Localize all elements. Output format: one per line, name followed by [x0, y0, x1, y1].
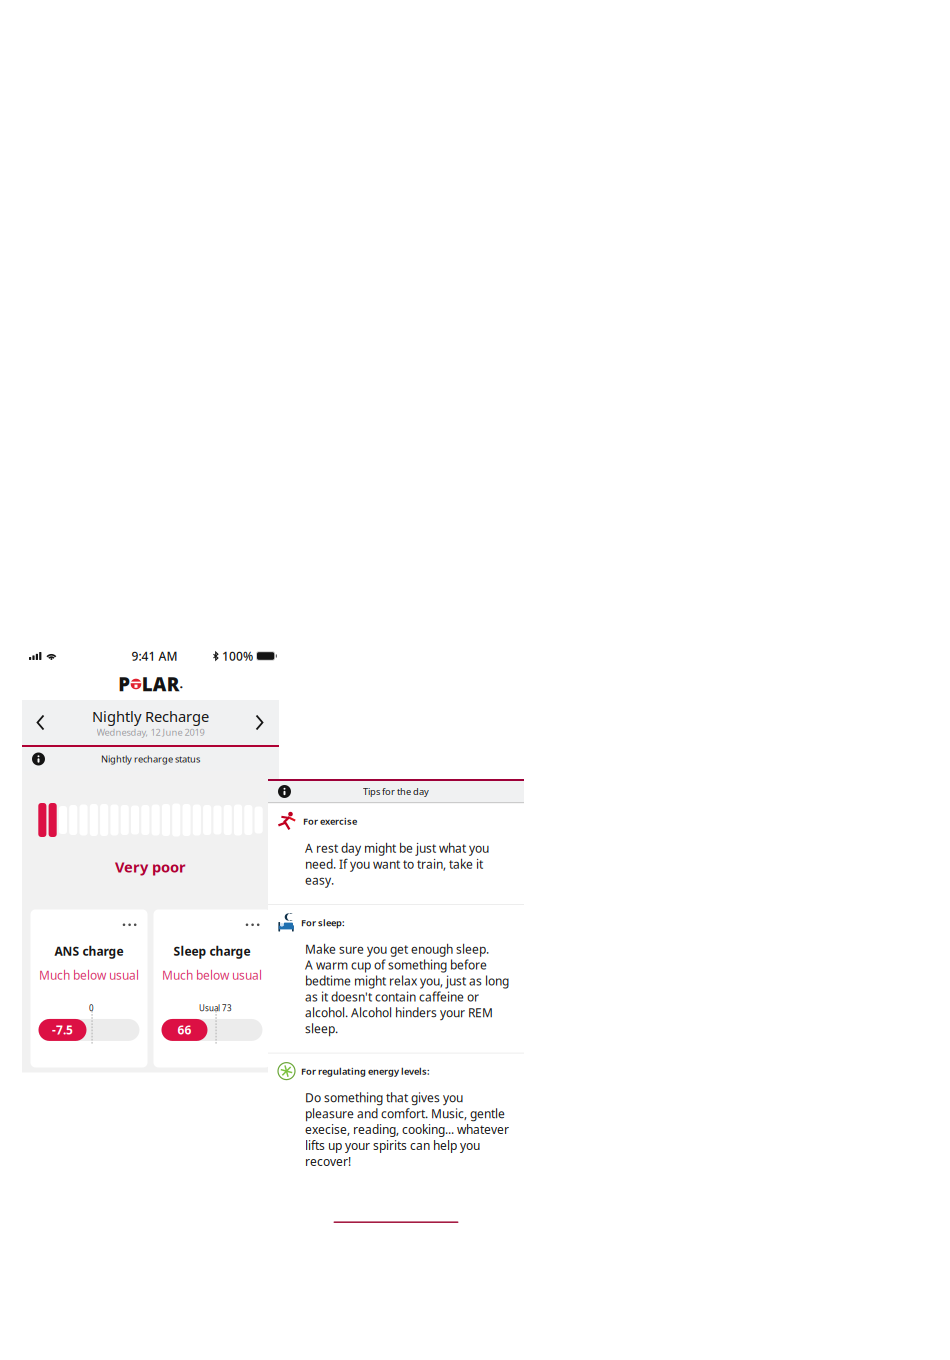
- staticText: A rest day might be just what you need. …: [305, 840, 489, 888]
- staticText: Make sure you get enough sleep. A warm c…: [305, 941, 509, 1037]
- staticText: LAR: [142, 672, 180, 696]
- button[interactable]: Sleep charge: [153, 909, 270, 1067]
- staticText: Do something that gives you pleasure and…: [305, 1090, 509, 1169]
- button[interactable]: Next day: [241, 700, 279, 745]
- staticText: 9:41 AM: [131, 648, 177, 664]
- staticText: Much below usual: [162, 967, 262, 983]
- staticText: 0: [89, 1003, 94, 1013]
- staticText: .: [180, 677, 183, 691]
- button[interactable]: Nightly recharge status: [22, 747, 279, 771]
- staticText: Nightly Recharge: [92, 707, 209, 726]
- staticText: P: [118, 672, 130, 696]
- staticText: For regulating energy levels:: [301, 1065, 430, 1077]
- button[interactable]: Tips for the day: [268, 781, 524, 802]
- staticText: Usual 73: [199, 1003, 232, 1013]
- staticText: Much below usual: [39, 967, 139, 983]
- staticText: 100%: [222, 648, 253, 664]
- staticText: Nightly recharge status: [101, 753, 200, 765]
- staticText: Tips for the day: [363, 785, 429, 798]
- button[interactable]: Previous day: [22, 700, 60, 745]
- button[interactable]: ANS charge: [30, 909, 147, 1067]
- staticText: For sleep:: [301, 916, 345, 929]
- staticText: Sleep charge: [173, 943, 250, 959]
- staticText: 66: [177, 1022, 191, 1038]
- staticText: Very poor: [115, 857, 186, 876]
- staticText: ANS charge: [54, 943, 123, 959]
- staticText: Wednesday, 12 June 2019: [96, 726, 204, 738]
- staticText: For exercise: [303, 815, 357, 827]
- staticText: -7.5: [52, 1022, 73, 1038]
